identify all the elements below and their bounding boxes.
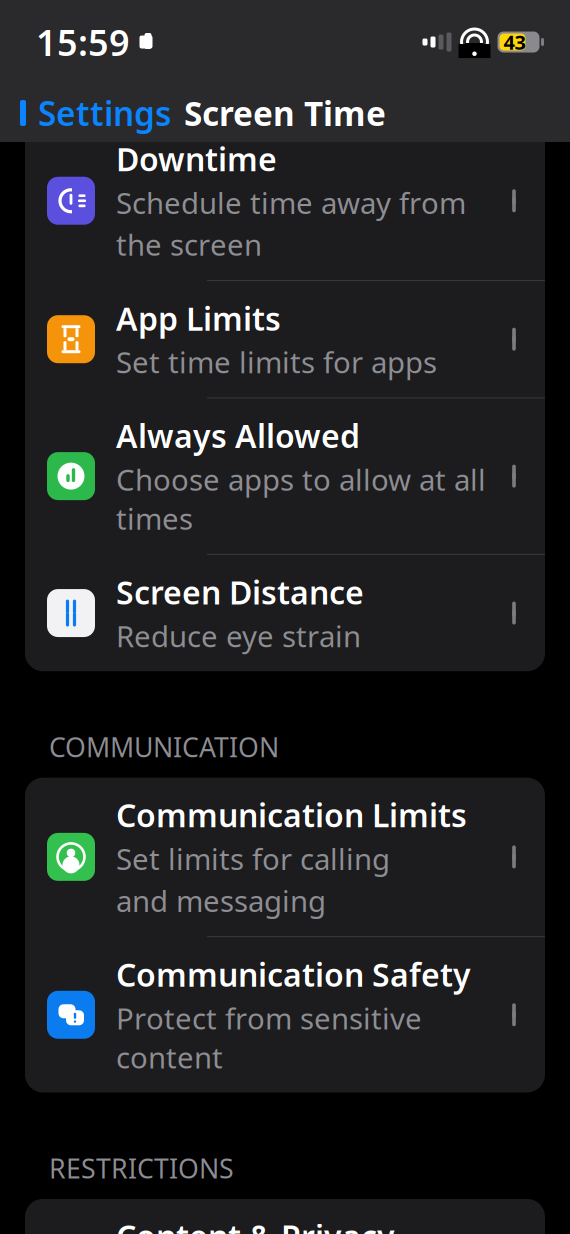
staticText: Set limits for calling [116, 839, 390, 878]
staticText: Set time limits for apps [116, 342, 437, 381]
staticText: Communication Limits [116, 794, 467, 836]
staticText: COMMUNICATION [49, 729, 279, 765]
button[interactable]: Communication Safety [25, 937, 545, 1092]
staticText: Downtime [116, 138, 277, 180]
button[interactable]: Screen Distance [25, 555, 545, 671]
staticText: Settings [38, 91, 171, 135]
staticText: Screen Distance [116, 571, 364, 613]
staticText: and messaging [116, 881, 326, 920]
staticText: 43 [503, 29, 525, 55]
staticText: Schedule time away from [116, 183, 466, 222]
staticText: Always Allowed [116, 414, 360, 457]
button[interactable]: App Limits [25, 281, 545, 398]
button[interactable]: Content & Privacy Restrictions [25, 1199, 545, 1234]
staticText: Screen Time [184, 91, 386, 135]
button[interactable]: Downtime [25, 122, 545, 281]
staticText: the screen [116, 225, 262, 264]
staticText: Communication Safety [116, 953, 471, 996]
staticText: App Limits [116, 297, 281, 339]
button[interactable]: Communication Limits [25, 778, 545, 937]
staticText: Choose apps to allow at all times [116, 460, 486, 538]
staticText: Content & Privacy Restrictions [116, 1215, 395, 1234]
button[interactable]: Settings [0, 85, 171, 141]
staticText: Protect from sensitive content [116, 999, 422, 1076]
button[interactable]: Always Allowed [25, 398, 545, 555]
staticText: RESTRICTIONS [49, 1150, 234, 1186]
staticText: LIMIT USAGE [49, 73, 212, 109]
staticText: 15:59 [36, 18, 130, 66]
staticText: Reduce eye strain [116, 616, 361, 655]
